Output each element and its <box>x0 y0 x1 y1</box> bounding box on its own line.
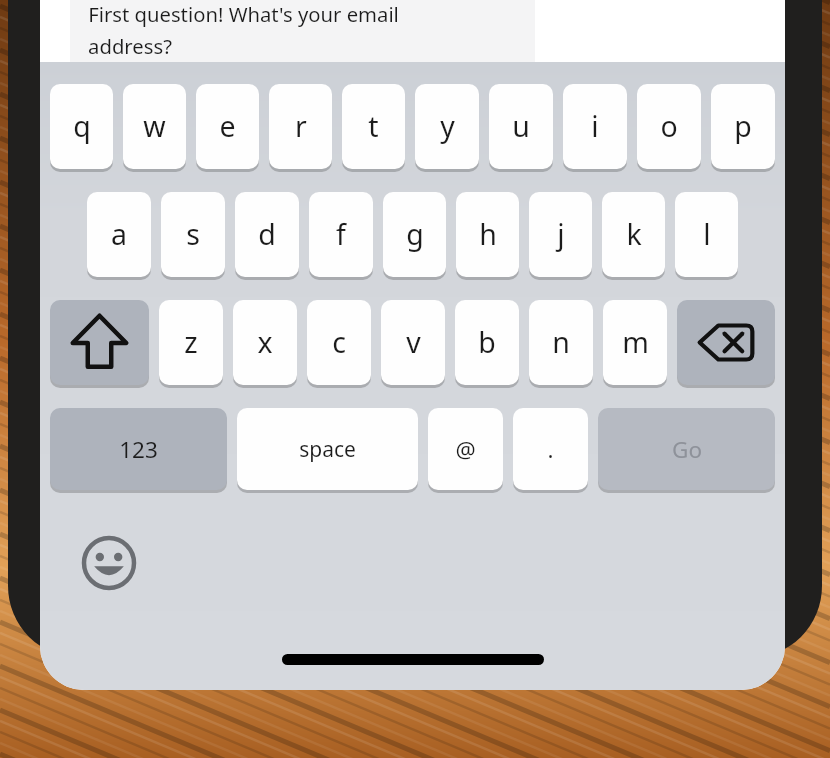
staticText: k <box>626 215 642 254</box>
button[interactable]: 123 <box>50 408 227 490</box>
button[interactable]: j <box>529 192 592 277</box>
button[interactable]: v <box>381 300 445 385</box>
button[interactable]: l <box>675 192 738 277</box>
button[interactable]: i <box>563 84 627 169</box>
staticText: y <box>440 107 455 146</box>
staticText: h <box>479 215 497 254</box>
button[interactable]: r <box>269 84 332 169</box>
button[interactable]: n <box>529 300 593 385</box>
staticText: a <box>111 215 127 254</box>
staticText: Message <box>86 110 171 138</box>
staticText: e <box>219 107 236 146</box>
button[interactable]: . <box>513 408 588 490</box>
staticText: First question! What's your email <box>88 0 399 28</box>
button[interactable]: c <box>307 300 371 385</box>
button[interactable]: k <box>602 192 665 277</box>
staticText: v <box>406 323 421 362</box>
button[interactable]: t <box>342 84 405 169</box>
button[interactable]: g <box>383 192 446 277</box>
staticText: s <box>186 215 200 254</box>
button[interactable]: p <box>711 84 775 169</box>
button[interactable]: o <box>637 84 701 169</box>
staticText: z <box>184 323 198 362</box>
button[interactable]: Shift <box>50 300 149 385</box>
button[interactable]: s <box>161 192 225 277</box>
button[interactable]: u <box>489 84 553 169</box>
staticText: o <box>660 107 678 146</box>
staticText: u <box>512 107 530 146</box>
staticText: b <box>478 323 496 362</box>
staticText: p <box>734 107 752 146</box>
staticText: g <box>406 215 424 254</box>
button[interactable]: Backspace <box>677 300 775 385</box>
button[interactable]: Send <box>721 110 785 150</box>
staticText: q <box>73 107 91 146</box>
staticText: f <box>336 215 346 254</box>
button[interactable]: e <box>196 84 259 169</box>
staticText: c <box>332 323 346 362</box>
button[interactable]: @ <box>428 408 503 490</box>
button[interactable]: x <box>233 300 297 385</box>
staticText: m <box>622 323 649 362</box>
button[interactable]: h <box>456 192 519 277</box>
staticText: address? <box>88 32 172 60</box>
staticText: 123 <box>119 434 158 465</box>
button[interactable]: d <box>235 192 299 277</box>
staticText: r <box>295 107 307 146</box>
button[interactable]: First question! What's your email <box>70 0 535 78</box>
staticText: i <box>591 107 599 146</box>
button[interactable]: y <box>415 84 479 169</box>
staticText: w <box>143 107 166 146</box>
button[interactable]: w <box>123 84 186 169</box>
button[interactable]: m <box>603 300 667 385</box>
staticText: l <box>703 215 711 254</box>
button[interactable]: Emoji <box>78 532 140 594</box>
staticText: d <box>258 215 276 254</box>
staticText: @ <box>455 434 476 465</box>
staticText: j <box>557 215 565 254</box>
staticText: x <box>257 323 273 362</box>
button[interactable]: f <box>309 192 373 277</box>
button[interactable]: z <box>159 300 223 385</box>
staticText: t <box>368 107 379 146</box>
button[interactable]: space <box>237 408 418 490</box>
staticText: n <box>552 323 570 362</box>
button[interactable]: q <box>50 84 113 169</box>
button[interactable]: Go <box>598 408 775 490</box>
staticText: space <box>299 435 356 464</box>
button[interactable]: b <box>455 300 519 385</box>
button[interactable]: a <box>87 192 151 277</box>
staticText: . <box>547 434 554 465</box>
staticText: Go <box>672 434 702 465</box>
